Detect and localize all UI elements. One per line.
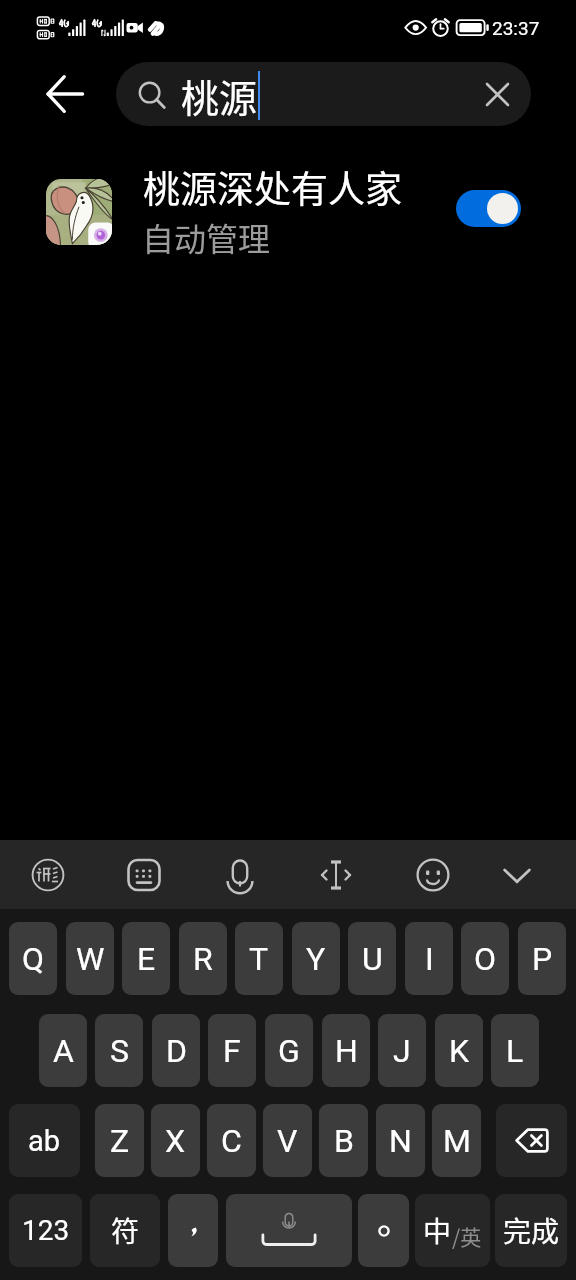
- button[interactable]: Move cursor: [307, 840, 365, 909]
- staticText: N: [389, 1122, 412, 1160]
- staticText: K: [449, 1032, 470, 1070]
- staticText: H: [335, 1032, 358, 1070]
- staticText: 23:37: [492, 17, 540, 39]
- staticText: E: [137, 940, 156, 978]
- staticText: A: [53, 1032, 74, 1070]
- button[interactable]: 桃源深处有人家: [0, 167, 576, 256]
- button[interactable]: U: [348, 922, 396, 995]
- button[interactable]: H: [322, 1014, 370, 1087]
- button[interactable]: C: [207, 1104, 256, 1177]
- staticText: F: [223, 1032, 241, 1070]
- button[interactable]: M: [432, 1104, 481, 1177]
- button[interactable]: N: [376, 1104, 425, 1177]
- button[interactable]: Auto manage toggle: [456, 190, 521, 227]
- staticText: Z: [110, 1122, 130, 1160]
- staticText: ab: [28, 1124, 61, 1158]
- button[interactable]: X: [151, 1104, 200, 1177]
- staticText: O: [474, 940, 497, 978]
- button[interactable]: Voice input: [211, 840, 269, 909]
- button[interactable]: Emoji: [404, 840, 462, 909]
- staticText: 完成: [503, 1210, 560, 1251]
- staticText: 桃源: [181, 68, 258, 123]
- staticText: 123: [22, 1214, 70, 1247]
- staticText: W: [76, 940, 105, 978]
- button[interactable]: Backspace: [496, 1104, 567, 1177]
- staticText: B: [334, 1122, 354, 1160]
- button[interactable]: B: [319, 1104, 368, 1177]
- staticText: 中: [423, 1210, 452, 1251]
- staticText: 桃源深处有人家: [143, 160, 402, 214]
- button[interactable]: Back: [37, 66, 93, 122]
- button[interactable]: I: [405, 922, 453, 995]
- button[interactable]: Numbers: [9, 1194, 82, 1267]
- button[interactable]: L: [491, 1014, 539, 1087]
- staticText: Q: [22, 940, 45, 978]
- staticText: U: [362, 940, 383, 978]
- button[interactable]: Z: [95, 1104, 144, 1177]
- button[interactable]: T: [235, 922, 283, 995]
- button[interactable]: Done: [495, 1194, 567, 1267]
- button[interactable]: Period: [358, 1194, 409, 1267]
- button[interactable]: P: [518, 922, 566, 995]
- staticText: G: [278, 1032, 300, 1070]
- button[interactable]: G: [265, 1014, 313, 1087]
- button[interactable]: R: [179, 922, 227, 995]
- button[interactable]: Input method: [19, 840, 77, 909]
- staticText: M: [443, 1122, 471, 1160]
- button[interactable]: V: [263, 1104, 312, 1177]
- button[interactable]: J: [378, 1014, 426, 1087]
- staticText: J: [393, 1032, 411, 1070]
- button[interactable]: 桃源: [116, 62, 531, 126]
- button[interactable]: Keyboard layout: [115, 840, 173, 909]
- staticText: P: [532, 940, 553, 978]
- button[interactable]: W: [66, 922, 114, 995]
- button[interactable]: ab key: [9, 1104, 80, 1177]
- button[interactable]: Y: [292, 922, 340, 995]
- staticText: L: [506, 1032, 524, 1070]
- staticText: 符: [111, 1210, 140, 1251]
- staticText: Y: [306, 940, 326, 978]
- staticText: I: [425, 940, 434, 978]
- button[interactable]: F: [208, 1014, 256, 1087]
- button[interactable]: Chinese English toggle: [415, 1194, 490, 1267]
- staticText: S: [110, 1032, 129, 1070]
- button[interactable]: Space: [226, 1194, 352, 1267]
- button[interactable]: E: [122, 922, 170, 995]
- staticText: D: [166, 1032, 187, 1070]
- button[interactable]: A: [39, 1014, 87, 1087]
- button[interactable]: Clear search: [473, 70, 521, 118]
- staticText: R: [193, 940, 213, 978]
- staticText: T: [249, 940, 269, 978]
- button[interactable]: K: [435, 1014, 483, 1087]
- button[interactable]: D: [152, 1014, 200, 1087]
- button[interactable]: Hide keyboard: [488, 840, 546, 909]
- staticText: X: [165, 1122, 186, 1160]
- button[interactable]: O: [461, 922, 509, 995]
- staticText: /英: [452, 1221, 482, 1251]
- staticText: 自动管理: [142, 214, 271, 260]
- button[interactable]: Comma: [168, 1194, 218, 1267]
- button[interactable]: Q: [9, 922, 57, 995]
- staticText: C: [221, 1122, 242, 1160]
- button[interactable]: S: [95, 1014, 143, 1087]
- staticText: V: [277, 1122, 298, 1160]
- button[interactable]: Symbols: [90, 1194, 160, 1267]
